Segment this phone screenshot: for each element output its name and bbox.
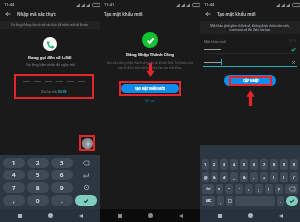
staticText: 9	[283, 162, 286, 167]
button[interactable]: *	[216, 184, 223, 194]
staticText: 9	[60, 184, 64, 192]
button[interactable]: Back	[76, 211, 85, 220]
button[interactable]: ?	[275, 184, 283, 194]
staticText: Nhập mã xác thực	[17, 11, 57, 17]
staticText: Mật khẩu phải gồm chữ và số, không được …	[207, 24, 293, 32]
button[interactable]: 6	[51, 170, 73, 180]
staticText: #	[213, 175, 216, 180]
button[interactable]: Back	[4, 10, 12, 18]
button[interactable]: 7	[260, 159, 268, 170]
button[interactable]: 2	[211, 159, 218, 170]
button[interactable]: Recents	[15, 211, 24, 220]
button[interactable]: )	[280, 172, 288, 182]
staticText: Để sau	[145, 99, 156, 103]
button[interactable]: 9	[280, 159, 288, 170]
button[interactable]: +	[260, 172, 268, 182]
staticText: 6	[60, 171, 64, 179]
staticText: Mật khẩu mới	[204, 39, 227, 44]
button[interactable]: '	[235, 184, 243, 194]
button[interactable]: 6	[250, 159, 258, 170]
button[interactable]: Backspace	[285, 184, 298, 194]
staticText: *	[218, 187, 221, 192]
staticText: HIỆN	[289, 39, 296, 43]
button[interactable]: Backspace	[75, 158, 97, 168]
staticText: ;	[258, 187, 260, 192]
staticText: +	[263, 175, 266, 180]
button[interactable]: đ	[220, 172, 228, 182]
button[interactable]: (	[270, 172, 278, 182]
button[interactable]: "	[225, 184, 233, 194]
staticText: _	[233, 175, 235, 180]
button[interactable]: -	[250, 172, 258, 182]
button[interactable]: Enter	[75, 170, 97, 180]
button[interactable]: Done	[75, 195, 97, 206]
button[interactable]: 3	[51, 158, 73, 168]
button[interactable]: :	[245, 184, 253, 194]
staticText: 3	[60, 159, 64, 167]
button[interactable]: 5	[27, 170, 49, 180]
staticText: 1	[12, 159, 16, 167]
button[interactable]: Home	[146, 211, 155, 220]
button[interactable]: !	[265, 184, 273, 194]
button[interactable]: 1	[202, 159, 209, 170]
staticText: .	[61, 197, 63, 205]
staticText: =\<	[206, 187, 211, 191]
button[interactable]: Keyboard settings	[226, 196, 233, 206]
button[interactable]: .	[51, 195, 73, 206]
staticText: 2	[213, 162, 216, 167]
button[interactable]: Text cursor handle	[82, 138, 93, 149]
button[interactable]: Back	[276, 211, 285, 220]
staticText: đ	[223, 175, 226, 180]
button[interactable]: 7	[3, 182, 25, 193]
button[interactable]: Home	[246, 211, 255, 220]
button[interactable]: 3	[220, 159, 228, 170]
button[interactable]: =\<	[202, 184, 214, 194]
staticText: 6	[253, 162, 256, 167]
staticText: 4	[233, 162, 236, 167]
staticText: Đăng Nhập Thành Công	[126, 52, 175, 58]
button[interactable]: Recents	[115, 211, 124, 220]
button[interactable]: ;	[255, 184, 263, 194]
button[interactable]: 1	[3, 158, 25, 168]
button[interactable]: @	[202, 172, 209, 182]
staticText: 0	[293, 162, 296, 167]
button[interactable]: 0	[27, 195, 49, 206]
button[interactable]: &	[240, 172, 248, 182]
button[interactable]: #	[211, 172, 218, 182]
button[interactable]: 2	[27, 158, 49, 168]
staticText: (	[273, 175, 275, 180]
button[interactable]: 4	[230, 159, 238, 170]
staticText: 5	[36, 171, 40, 179]
button[interactable]: 8	[270, 159, 278, 170]
staticText: 5	[243, 162, 246, 167]
button[interactable]: /	[290, 172, 298, 182]
button[interactable]: Home	[46, 211, 55, 220]
button[interactable]: ,	[3, 195, 25, 206]
button[interactable]: Done	[286, 196, 298, 206]
button[interactable]: ,	[217, 196, 224, 206]
button[interactable]: Back	[176, 211, 185, 220]
staticText: 11:41	[104, 2, 115, 7]
button[interactable]: 5	[240, 159, 248, 170]
button[interactable]: ABC	[202, 196, 215, 206]
button[interactable]: 8	[27, 182, 49, 193]
staticText: '	[239, 187, 240, 192]
staticText: TẠO MẬT KHẨU MỚI	[135, 87, 165, 91]
staticText: )	[283, 175, 285, 180]
button[interactable]: Recents	[215, 211, 224, 220]
button[interactable]: Emoji	[75, 182, 97, 193]
button[interactable]: 4	[3, 170, 25, 180]
staticText: Tạo mật khẩu mới	[217, 11, 256, 17]
button[interactable]: Để sau	[144, 98, 157, 104]
staticText: 7	[12, 184, 16, 192]
button[interactable]: 0	[290, 159, 298, 170]
button[interactable]: 9	[51, 182, 73, 193]
button[interactable]: TẠO MẬT KHẨU MỚI	[121, 84, 179, 93]
staticText: Gửi lại mã	[41, 89, 58, 93]
button[interactable]: HIỆN	[289, 39, 296, 43]
button[interactable]: Back	[204, 10, 212, 18]
button[interactable]: _	[230, 172, 238, 182]
button[interactable]: .	[277, 196, 284, 206]
button[interactable]: CẬP NHẬT	[224, 75, 276, 86]
